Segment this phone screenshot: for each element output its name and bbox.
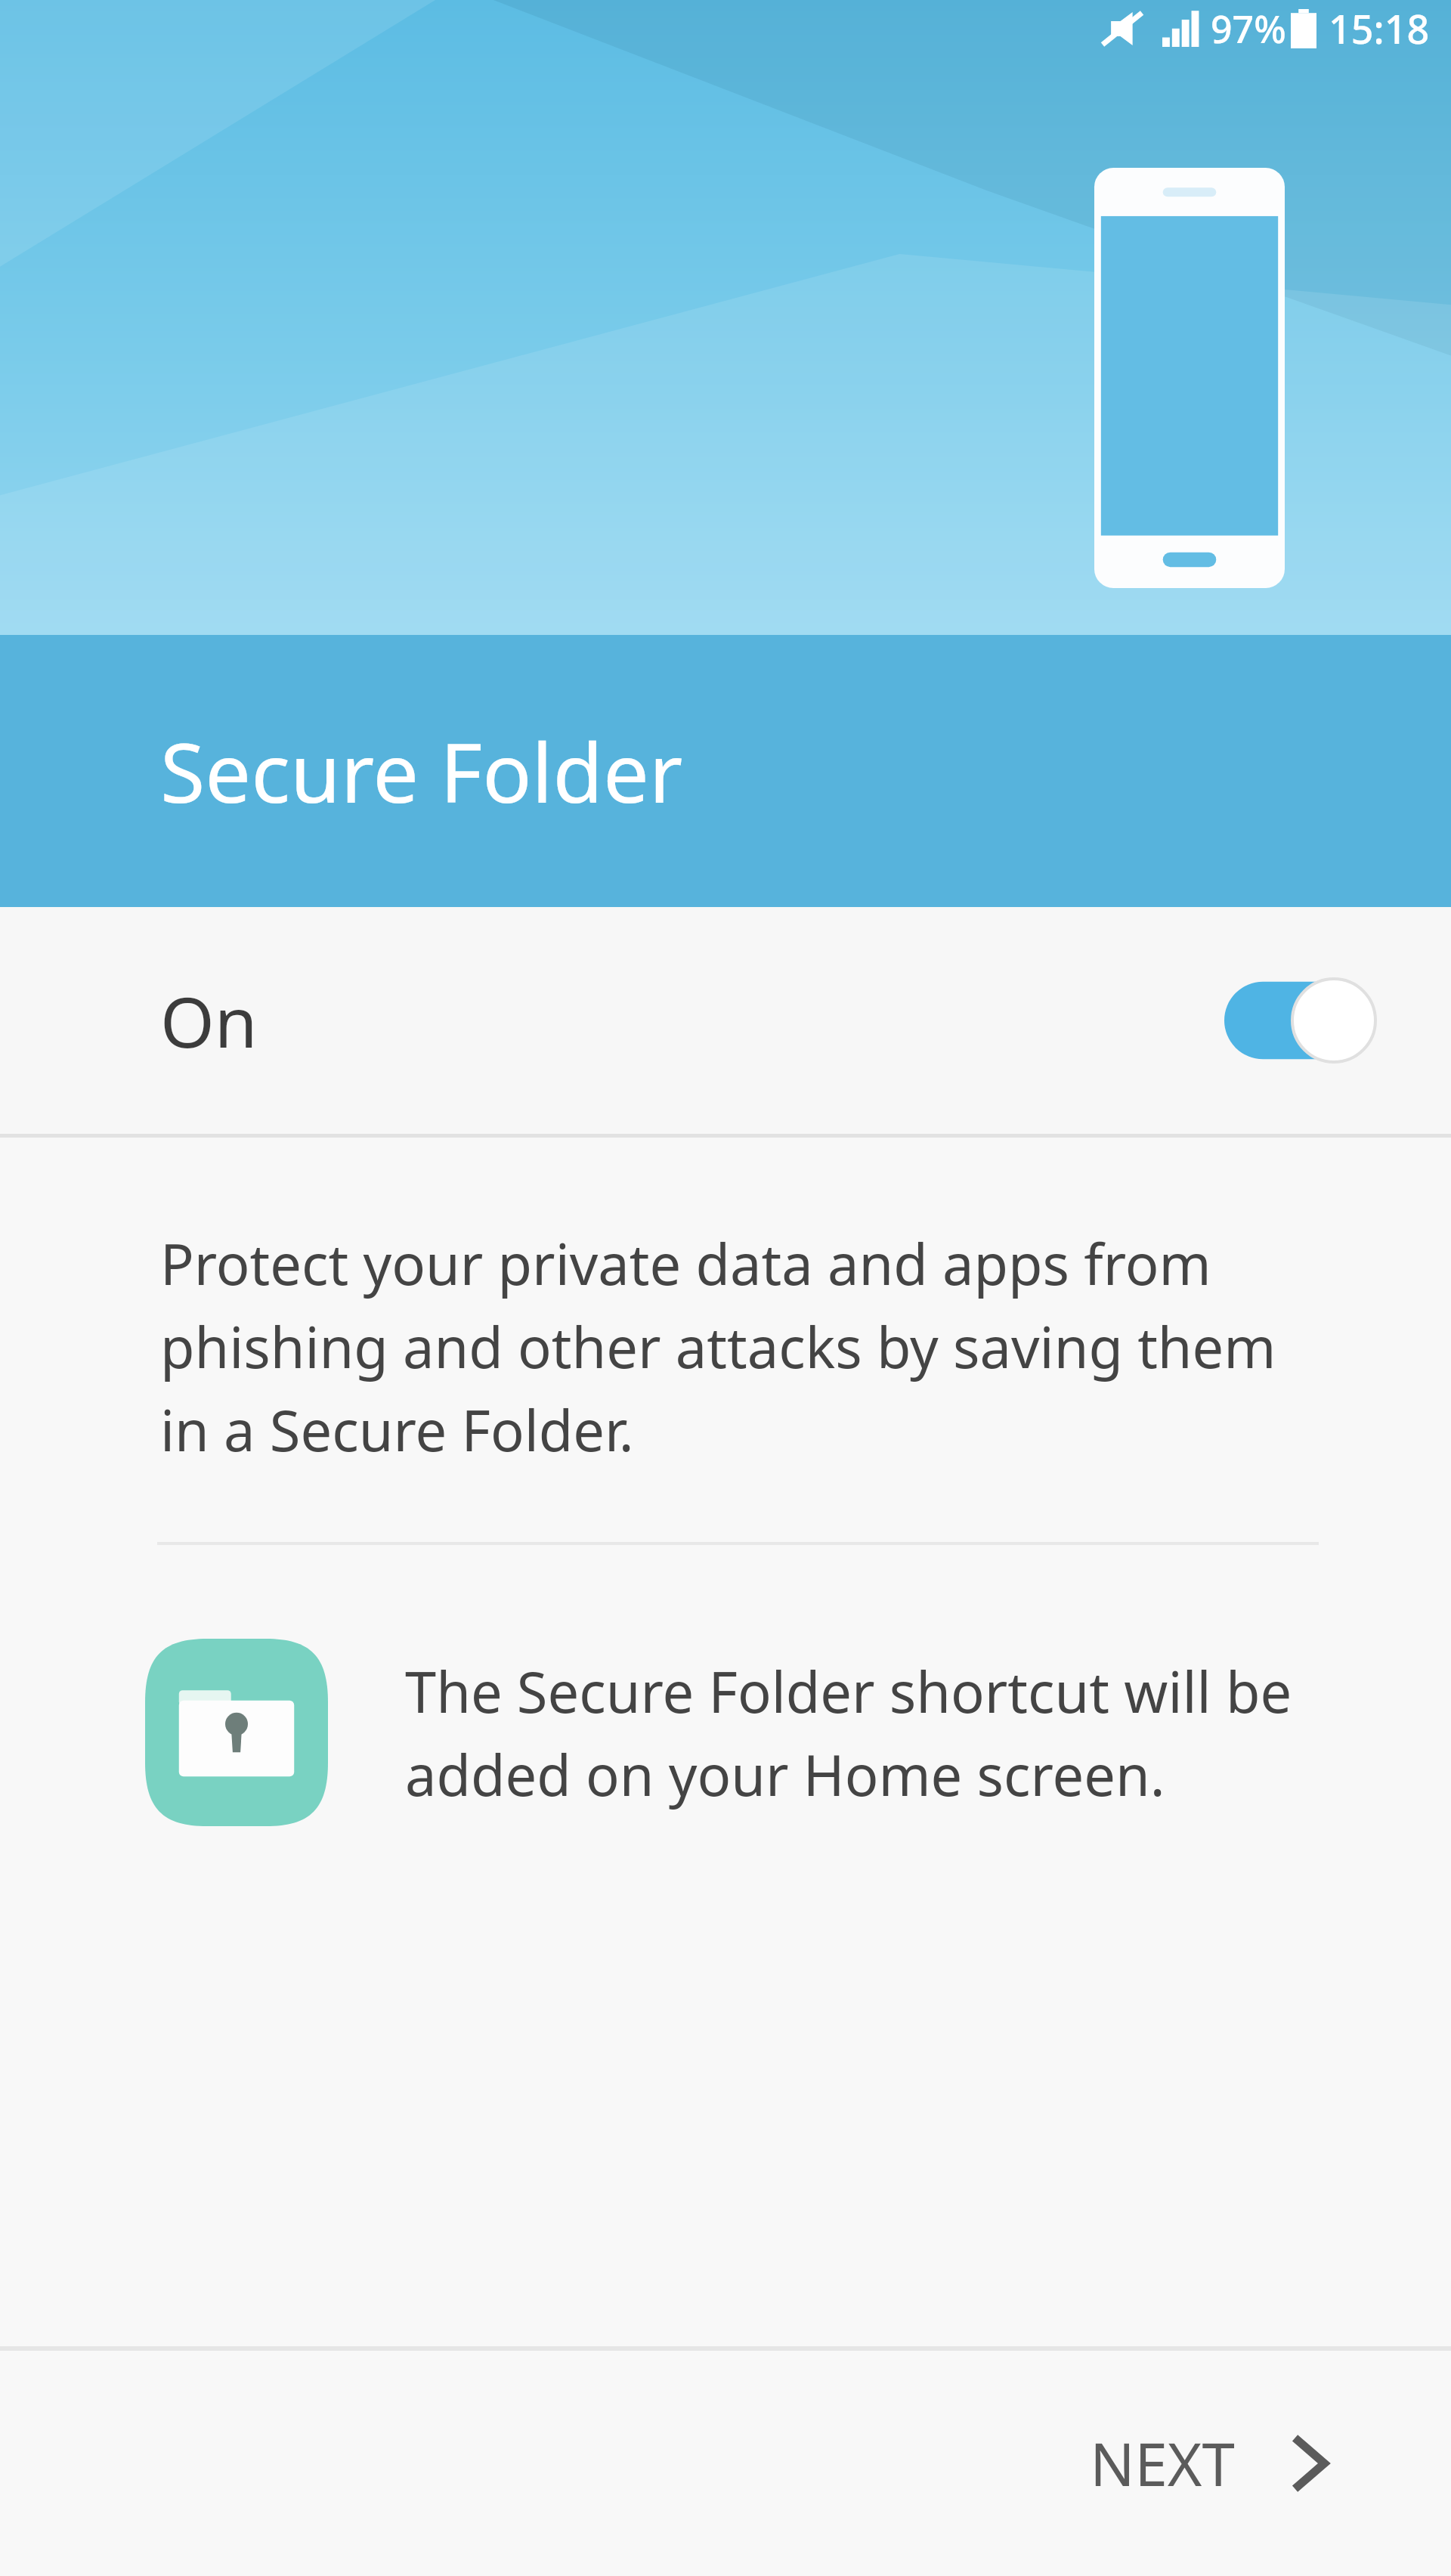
- button[interactable]: Secure Folder on: [1224, 979, 1375, 1062]
- button[interactable]: On: [0, 907, 1451, 1134]
- staticText: 97%: [1211, 3, 1286, 54]
- staticText: On: [160, 974, 258, 1068]
- button[interactable]: NEXT: [999, 2351, 1451, 2576]
- staticText: Secure Folder: [160, 716, 683, 827]
- staticText: Protect your private data and apps from …: [160, 1225, 1323, 1468]
- staticText: 15:18: [1329, 2, 1430, 55]
- staticText: The Secure Folder shortcut will be added…: [405, 1653, 1338, 1813]
- staticText: NEXT: [1090, 2423, 1235, 2503]
